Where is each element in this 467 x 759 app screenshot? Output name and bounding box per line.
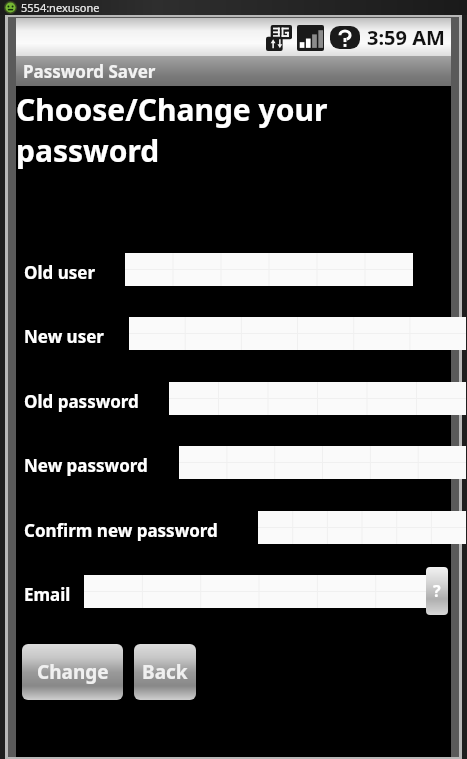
staticText: Confirm new password	[24, 519, 218, 542]
staticText: New password	[24, 454, 148, 477]
button[interactable]: Text input	[84, 575, 434, 608]
staticText: 3:59 AM	[367, 24, 445, 51]
staticText: Password Saver	[23, 60, 156, 83]
button[interactable]: Change	[22, 644, 123, 700]
staticText: password	[16, 130, 160, 171]
button[interactable]: Email help	[426, 567, 448, 615]
staticText: 5554:nexusone	[21, 0, 100, 15]
staticText: Old user	[24, 261, 96, 284]
staticText: Change	[37, 659, 109, 685]
button[interactable]: Back	[134, 644, 196, 700]
staticText: Email	[24, 583, 71, 606]
staticText: New user	[24, 325, 104, 348]
staticText: Back	[142, 659, 188, 685]
staticText: Choose/Change your	[16, 89, 328, 130]
staticText: ?	[433, 580, 441, 602]
staticText: Old password	[24, 390, 139, 413]
